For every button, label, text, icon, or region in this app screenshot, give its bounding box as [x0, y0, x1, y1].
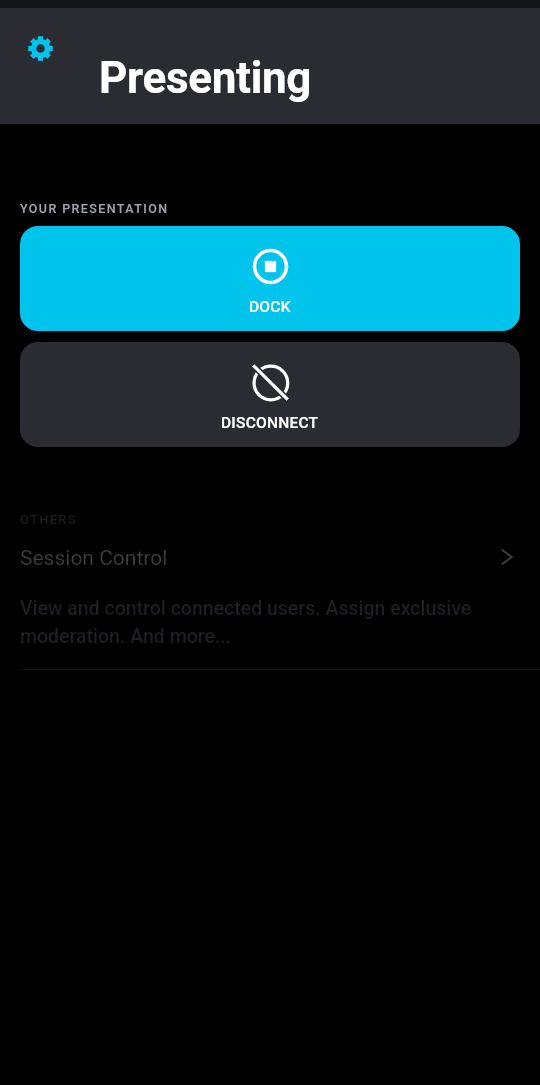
staticText: DISCONNECT [221, 414, 319, 432]
other: Open Session Control [495, 547, 519, 567]
button[interactable]: DISCONNECT [20, 342, 520, 447]
staticText: View and control connected users. Assign… [20, 597, 490, 648]
staticText: YOUR PRESENTATION [20, 201, 169, 216]
staticText: Presenting [99, 52, 312, 104]
staticText: Session Control [20, 546, 168, 571]
button[interactable]: DOCK [20, 226, 520, 331]
button[interactable]: Session Control [0, 546, 540, 670]
staticText: OTHERS [20, 512, 77, 527]
staticText: DOCK [249, 298, 291, 316]
button[interactable]: Settings [20, 28, 60, 68]
